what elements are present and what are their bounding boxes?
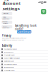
button[interactable]: Continue: [17, 30, 31, 33]
button[interactable]: Transfer sent: [0, 54, 48, 57]
staticText: Subscription renewed: [4, 57, 20, 59]
staticText: Payment received: [4, 48, 17, 50]
staticText: Transfer sent: [4, 54, 14, 56]
staticText: Invoice #2931: [4, 51, 14, 53]
staticText: Everything look right?: [15, 24, 36, 31]
staticText: Continue: [17, 30, 31, 33]
button[interactable]: Invoice #2931: [0, 51, 48, 54]
staticText: identity. They are never shared.: [2, 39, 24, 41]
button[interactable]: Payment received: [0, 63, 48, 66]
staticText: Activity: [2, 44, 13, 47]
staticText: Account settings: [3, 1, 21, 11]
button[interactable]: Phone number: [2, 21, 12, 24]
staticText: Privacy: [2, 34, 11, 37]
button[interactable]: Street address: [2, 25, 12, 28]
button[interactable]: Subscription renewed: [0, 57, 48, 60]
staticText: Street address: [2, 25, 9, 29]
staticText: Full name: [2, 13, 8, 14]
staticText: We use these details only to verify your: [2, 37, 27, 39]
staticText: 9:41: [4, 0, 9, 6]
staticText: Transfer sent: [4, 70, 14, 71]
button[interactable]: Invoice #2930: [0, 66, 48, 69]
staticText: Personal information: [2, 9, 16, 11]
button[interactable]: Email address: [2, 16, 12, 19]
staticText: Phone number: [2, 21, 8, 24]
button[interactable]: Payment received: [0, 48, 48, 51]
button[interactable]: Transfer sent: [0, 69, 48, 72]
button[interactable]: Full name: [2, 12, 12, 15]
staticText: Payment received: [4, 63, 17, 65]
staticText: Refund issued: [4, 60, 14, 62]
button[interactable]: Refund issued: [0, 60, 48, 63]
staticText: Email address: [2, 16, 9, 20]
staticText: Invoice #2930: [4, 66, 14, 68]
